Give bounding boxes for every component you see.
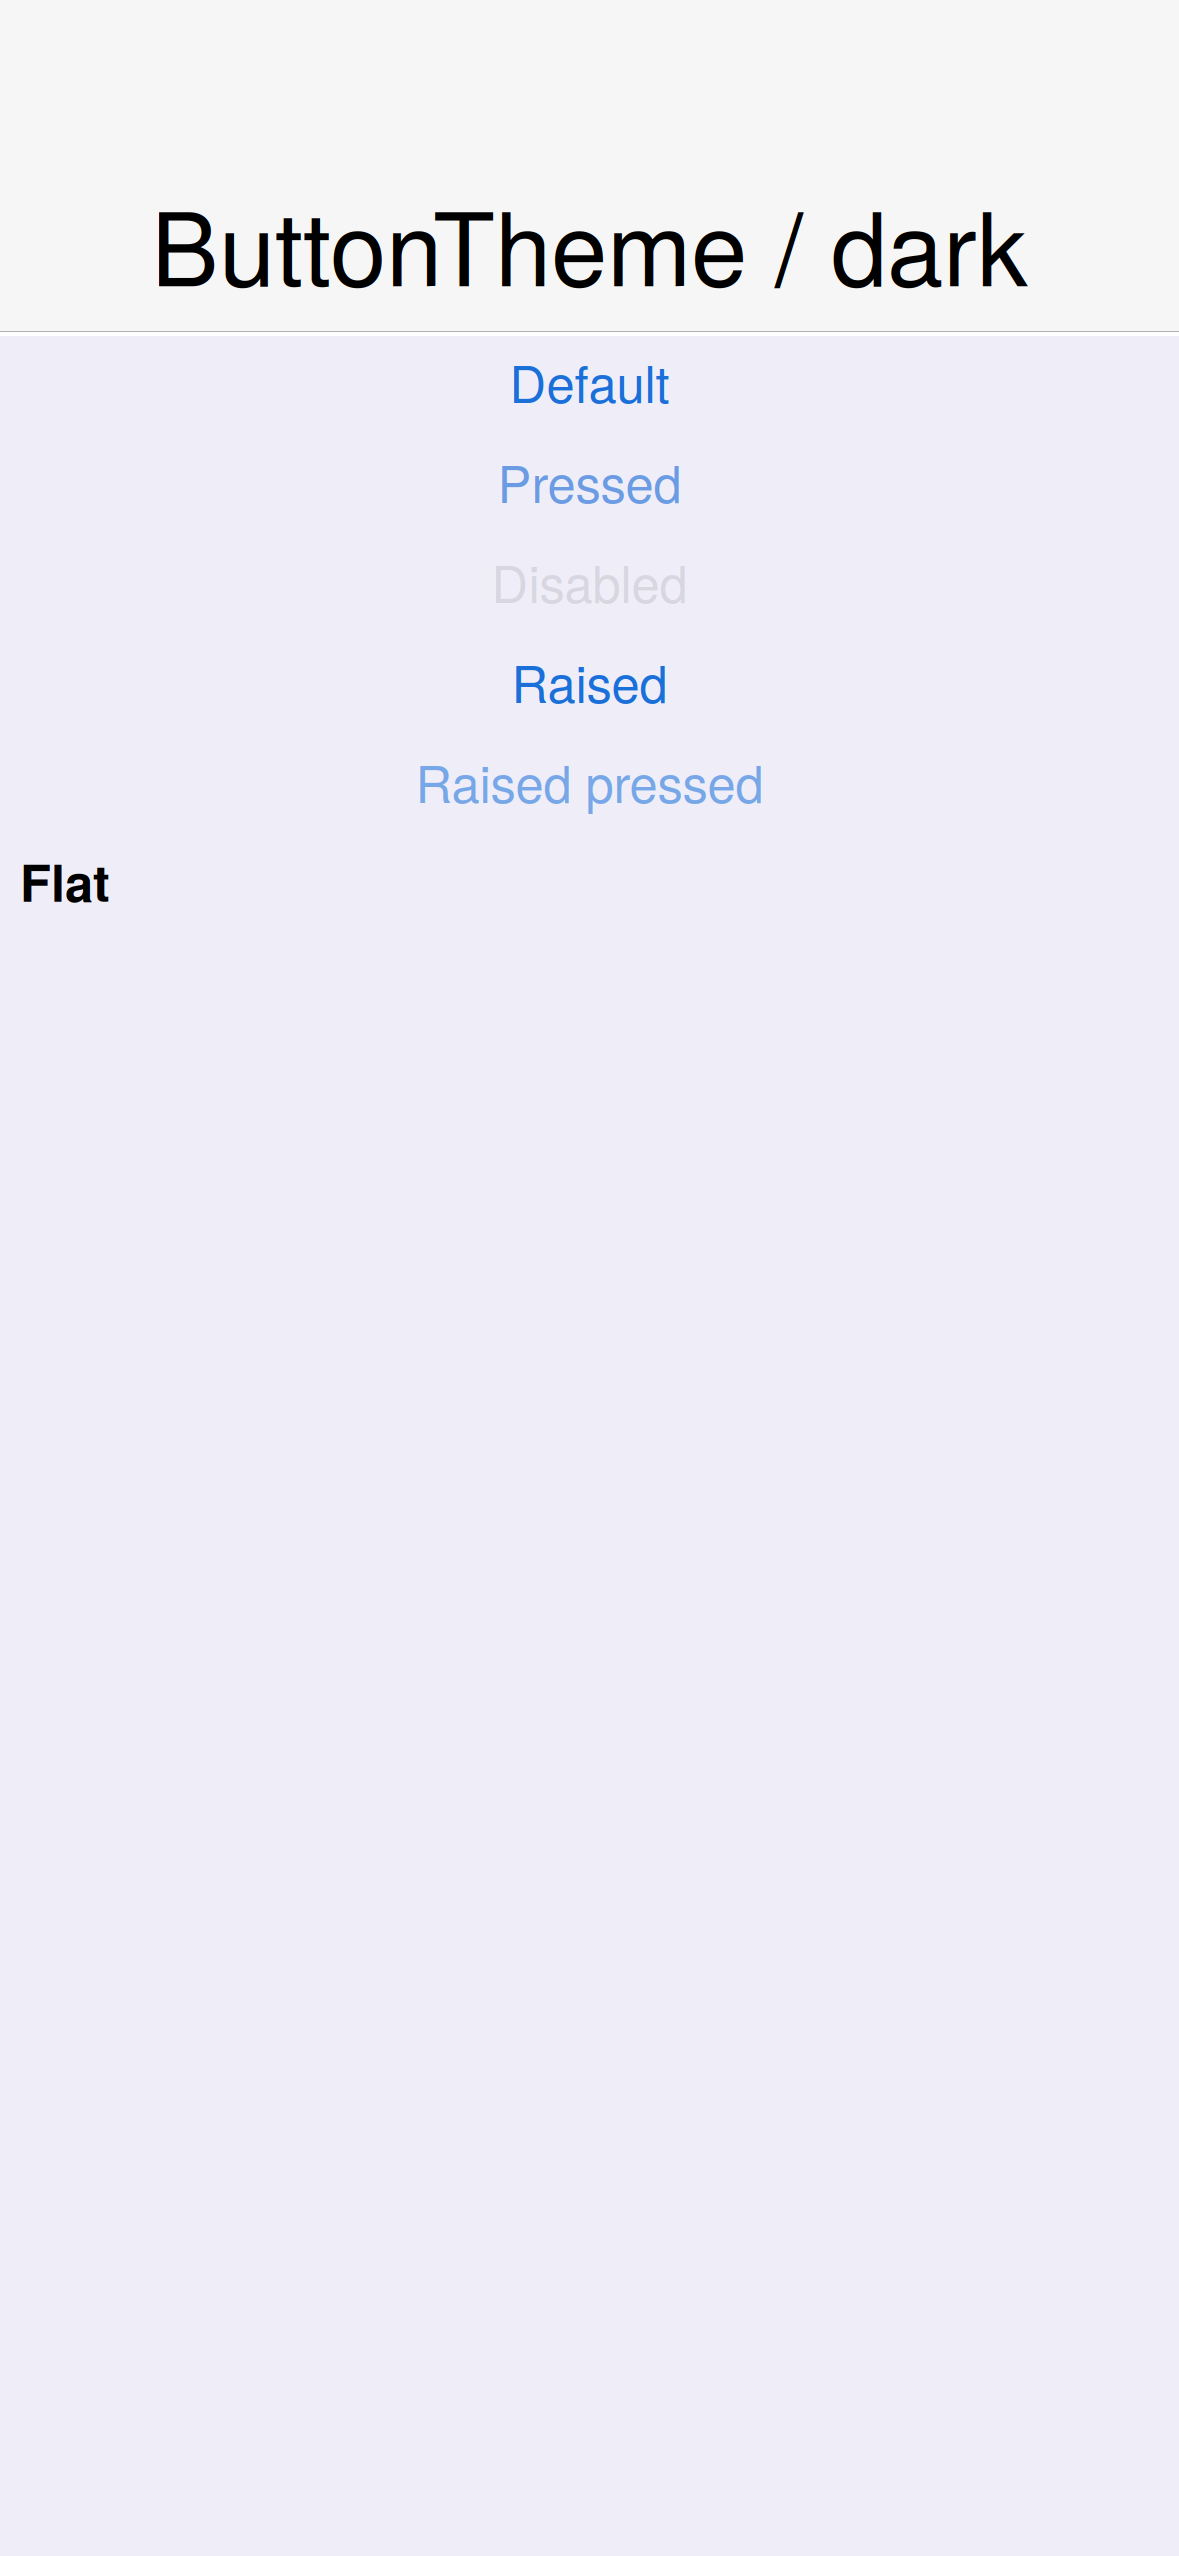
button[interactable]: Pressed: [0, 431, 1179, 531]
staticText: Flat: [20, 845, 110, 917]
staticText: Raised pressed: [415, 745, 763, 817]
button[interactable]: Default: [0, 331, 1179, 431]
staticText: ButtonTheme / dark: [151, 170, 1028, 315]
button[interactable]: Raised pressed: [0, 731, 1179, 831]
staticText: Raised: [511, 645, 667, 717]
staticText: Pressed: [497, 445, 681, 517]
staticText: Disabled: [491, 545, 687, 617]
staticText: Default: [509, 345, 669, 417]
button[interactable]: Disabled: [0, 531, 1179, 631]
button[interactable]: Raised: [0, 631, 1179, 731]
button[interactable]: Flat: [0, 831, 130, 931]
